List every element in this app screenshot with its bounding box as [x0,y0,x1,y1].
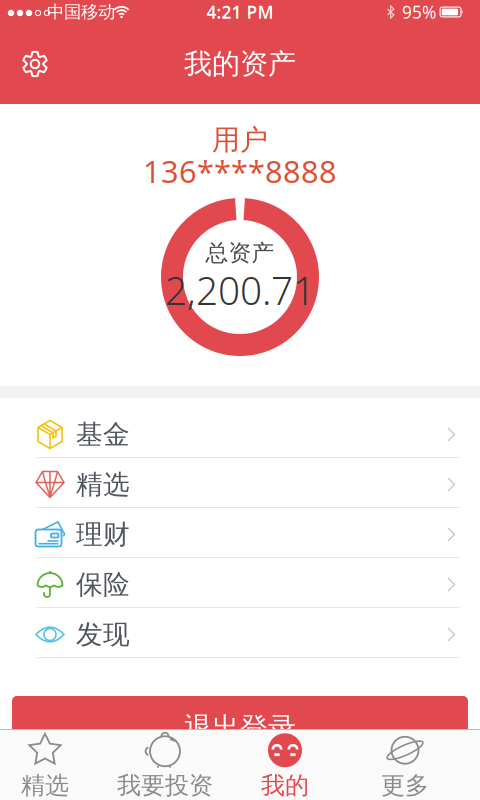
staticText: 退出登录 [184,711,296,745]
staticText: 精选 [76,468,130,501]
staticText: 4:21 PM [206,0,273,23]
button[interactable]: 发现 [0,610,480,659]
button[interactable]: 精选 [0,731,103,799]
button[interactable]: 我要投资 [107,731,223,799]
button[interactable]: 基金 [0,410,480,459]
staticText: 理财 [76,518,130,551]
button[interactable]: 退出登录 [12,696,468,760]
staticText: 基金 [76,418,130,451]
staticText: 精选 [21,771,69,800]
button[interactable]: 精选 [0,460,480,509]
button[interactable]: 更多 [347,731,463,799]
staticText: 用户 [212,123,268,157]
staticText: 136****8888 [143,151,337,191]
staticText: 我的资产 [184,47,296,81]
staticText: 更多 [381,771,429,800]
button[interactable]: 理财 [0,510,480,559]
staticText: 我的 [261,771,309,800]
button[interactable]: 我的 [227,731,343,799]
staticText: 保险 [76,568,130,601]
staticText: 总资产 [205,239,274,267]
staticText: 2,200.71 [165,264,315,316]
staticText: 我要投资 [117,771,213,800]
staticText: 发现 [76,618,130,651]
staticText: 95% [402,0,436,23]
staticText: 中国移动 [47,1,115,23]
button[interactable]: 保险 [0,560,480,609]
button[interactable]: Settings [13,44,57,84]
